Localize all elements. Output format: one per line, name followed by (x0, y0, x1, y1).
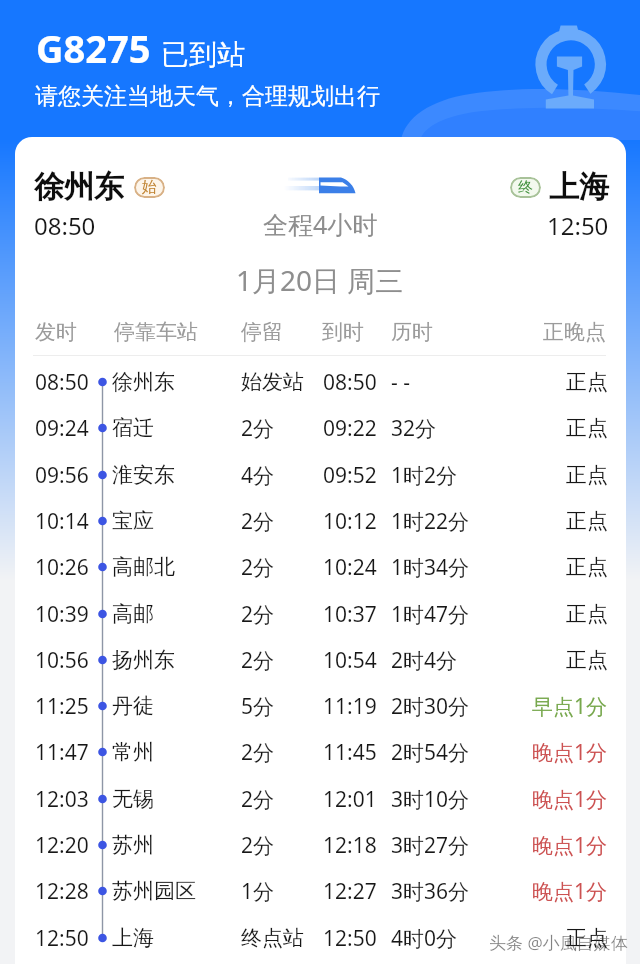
button[interactable]: 10:14 (15, 498, 626, 544)
button[interactable]: 09:56 (15, 452, 626, 498)
staticText: 2分 (241, 553, 275, 582)
staticText: 09:56 (35, 461, 89, 490)
staticText: 正点 (566, 508, 608, 534)
staticText: 1月20日 周三 (236, 261, 404, 299)
staticText: 12:27 (323, 877, 377, 906)
staticText: 12:50 (547, 209, 609, 242)
staticText: 4分 (241, 461, 275, 490)
staticText: 头条 @小風自媒体 (489, 931, 628, 954)
staticText: 常州 (112, 739, 154, 765)
staticText: 丹徒 (112, 693, 154, 719)
staticText: 发时 (35, 319, 77, 345)
staticText: 10:26 (35, 553, 89, 582)
other: China Railway (535, 24, 607, 110)
staticText: 2时30分 (391, 692, 470, 721)
button[interactable]: G8275 (36, 22, 245, 74)
staticText: 3时10分 (391, 785, 470, 814)
staticText: 1时47分 (391, 600, 470, 629)
staticText: 正点 (566, 554, 608, 580)
staticText: 高邮 (112, 601, 154, 627)
staticText: 4时0分 (391, 924, 458, 953)
staticText: 2分 (241, 785, 275, 814)
staticText: 12:28 (35, 877, 89, 906)
staticText: 正点 (566, 647, 608, 673)
button[interactable]: 10:56 (15, 637, 626, 683)
staticText: 12:20 (35, 831, 89, 860)
staticText: 10:14 (35, 507, 89, 536)
staticText: 无锡 (112, 786, 154, 812)
staticText: 1时34分 (391, 553, 470, 582)
staticText: 2分 (241, 646, 275, 675)
staticText: 2时54分 (391, 738, 470, 767)
staticText: 2时4分 (391, 646, 458, 675)
staticText: 11:47 (35, 738, 89, 767)
staticText: 2分 (241, 831, 275, 860)
staticText: 扬州东 (112, 647, 175, 673)
staticText: 2分 (241, 414, 275, 443)
staticText: 晚点1分 (532, 785, 608, 814)
staticText: 3时27分 (391, 831, 470, 860)
staticText: 全程4小时 (263, 207, 378, 241)
button[interactable]: 终 (465, 168, 609, 242)
staticText: 10:24 (323, 553, 377, 582)
staticText: 历时 (391, 319, 433, 345)
staticText: 正点 (566, 462, 608, 488)
button[interactable]: 11:25 (15, 683, 626, 729)
staticText: G8275 (36, 22, 151, 74)
staticText: 上海 (112, 925, 154, 951)
staticText: 09:52 (323, 461, 377, 490)
staticText: 停留 (241, 319, 283, 345)
staticText: 12:18 (323, 831, 377, 860)
button[interactable]: 1月20日 周三 (236, 261, 404, 299)
staticText: 5分 (241, 692, 275, 721)
staticText: 正点 (566, 601, 608, 627)
staticText: 3时36分 (391, 877, 470, 906)
staticText: 10:39 (35, 600, 89, 629)
staticText: 宿迁 (112, 415, 154, 441)
staticText: 淮安东 (112, 462, 175, 488)
button[interactable]: 08:50 (15, 359, 626, 405)
staticText: 1时22分 (391, 507, 470, 536)
staticText: 10:56 (35, 646, 89, 675)
staticText: 已到站 (161, 37, 245, 72)
staticText: 晚点1分 (532, 738, 608, 767)
staticText: 始 (142, 178, 157, 197)
staticText: 正点 (566, 369, 608, 395)
button[interactable]: 12:28 (15, 868, 626, 914)
staticText: 11:45 (323, 738, 377, 767)
staticText: 苏州园区 (112, 878, 196, 904)
staticText: 09:22 (323, 414, 377, 443)
staticText: 2分 (241, 507, 275, 536)
button[interactable]: 12:50 (15, 915, 626, 961)
staticText: 晚点1分 (532, 877, 608, 906)
button[interactable]: 09:24 (15, 405, 626, 451)
staticText: 高邮北 (112, 554, 175, 580)
staticText: 上海 (549, 168, 609, 206)
staticText: 09:24 (35, 414, 89, 443)
button[interactable]: 10:39 (15, 591, 626, 637)
staticText: 早点1分 (532, 692, 608, 721)
staticText: 1时2分 (391, 461, 458, 490)
staticText: - - (391, 368, 410, 397)
staticText: 2分 (241, 738, 275, 767)
button[interactable]: 徐州东 (34, 168, 174, 242)
staticText: 11:19 (323, 692, 377, 721)
staticText: 12:50 (323, 924, 377, 953)
staticText: 2分 (241, 600, 275, 629)
staticText: 10:54 (323, 646, 377, 675)
staticText: 10:12 (323, 507, 377, 536)
button[interactable]: 12:03 (15, 776, 626, 822)
staticText: 停靠车站 (114, 319, 198, 345)
staticText: 08:50 (34, 209, 96, 242)
staticText: 晚点1分 (532, 831, 608, 860)
staticText: 宝应 (112, 508, 154, 534)
staticText: 正点 (566, 415, 608, 441)
staticText: 请您关注当地天气，合理规划出行 (35, 82, 380, 111)
staticText: 1分 (241, 877, 275, 906)
button[interactable]: 12:20 (15, 822, 626, 868)
staticText: 12:50 (35, 924, 89, 953)
staticText: 08:50 (323, 368, 377, 397)
button[interactable]: 10:26 (15, 544, 626, 590)
button[interactable]: 11:47 (15, 729, 626, 775)
staticText: 终点站 (241, 925, 304, 951)
